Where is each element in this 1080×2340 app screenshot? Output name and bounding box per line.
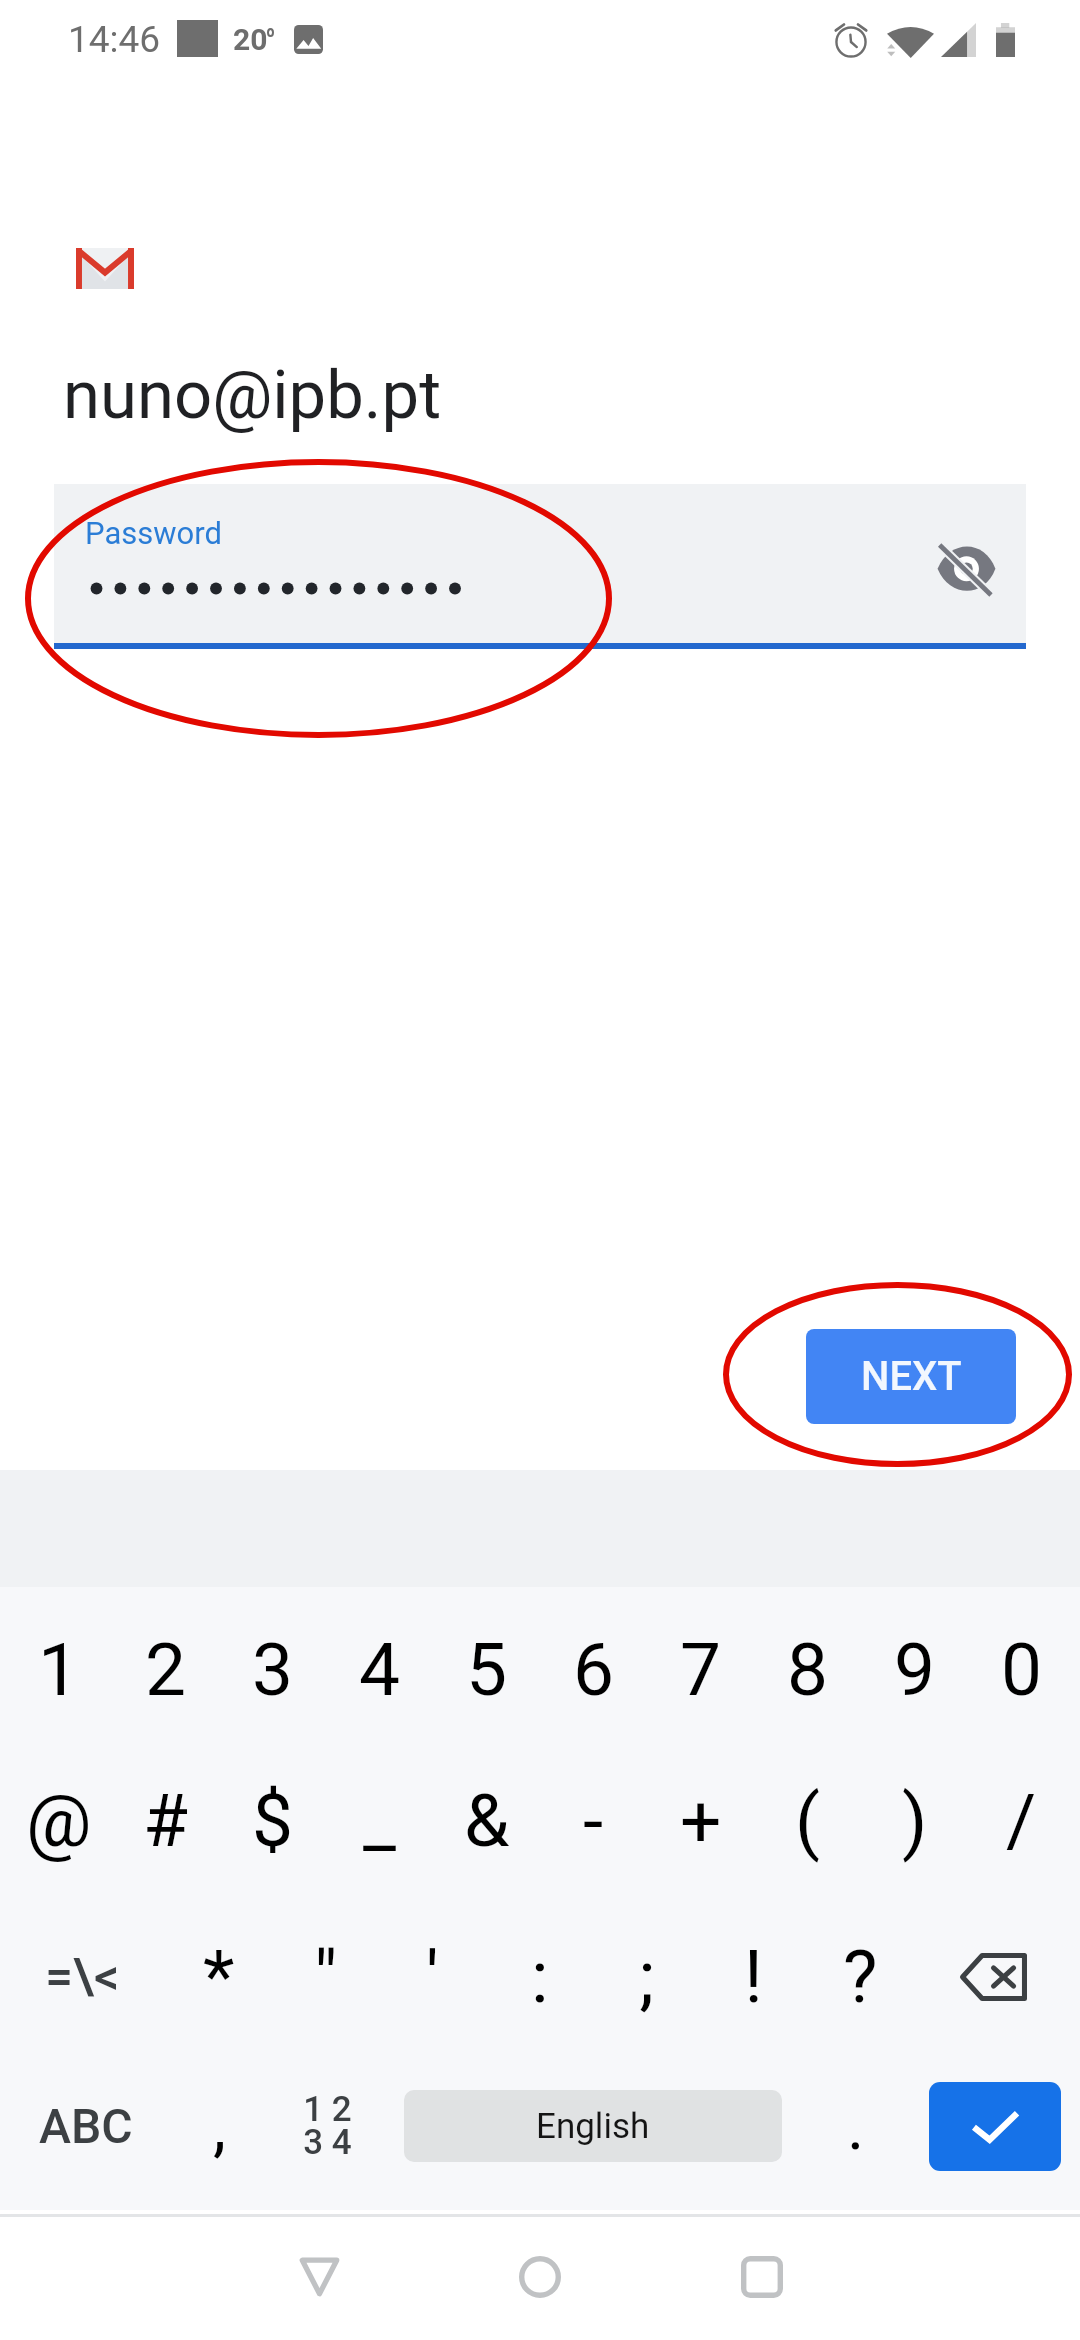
staticText: _ xyxy=(363,1778,396,1864)
button[interactable]: * xyxy=(165,1901,272,2053)
staticText: - xyxy=(583,1778,604,1864)
button[interactable]: 8 xyxy=(754,1594,861,1746)
button[interactable]: Recent apps xyxy=(722,2237,802,2317)
button[interactable]: Back xyxy=(279,2237,359,2317)
staticText: 0 xyxy=(1001,1627,1043,1713)
staticText: ' xyxy=(426,1934,439,2020)
staticText: nuno@ipb.pt xyxy=(63,356,442,435)
button[interactable]: 6 xyxy=(540,1594,647,1746)
button[interactable]: ( xyxy=(754,1745,861,1897)
button[interactable]: Password xyxy=(54,484,1026,643)
button[interactable]: Show password xyxy=(921,525,1011,615)
button[interactable]: 2 xyxy=(112,1594,219,1746)
button[interactable]: 5 xyxy=(433,1594,540,1746)
button[interactable]: NEXT xyxy=(806,1329,1016,1424)
button[interactable]: 7 xyxy=(647,1594,754,1746)
staticText: 1 xyxy=(38,1627,80,1713)
staticText: 20 xyxy=(233,22,268,57)
button[interactable]: : xyxy=(486,1901,593,2053)
button[interactable]: @ xyxy=(5,1745,112,1897)
button[interactable]: 1 xyxy=(5,1594,112,1746)
staticText: 5 xyxy=(466,1627,508,1713)
staticText: ( xyxy=(795,1778,820,1864)
button[interactable]: ; xyxy=(593,1901,700,2053)
staticText: 9 xyxy=(894,1627,936,1713)
staticText: + xyxy=(680,1778,722,1864)
staticText: 8 xyxy=(787,1627,829,1713)
staticText: 6 xyxy=(573,1627,615,1713)
staticText: ; xyxy=(639,1934,655,2020)
button[interactable]: 4 xyxy=(326,1594,433,1746)
staticText: " xyxy=(314,1934,338,2020)
staticText: =\< xyxy=(45,1948,120,2007)
staticText: / xyxy=(1006,1778,1037,1864)
button[interactable]: 0 xyxy=(968,1594,1075,1746)
staticText: . xyxy=(847,2088,865,2165)
staticText: , xyxy=(213,2088,226,2165)
button[interactable]: " xyxy=(272,1901,379,2053)
staticText: # xyxy=(143,1778,188,1864)
staticText: 3 xyxy=(252,1627,294,1713)
staticText: ! xyxy=(744,1934,763,2020)
button[interactable]: _ xyxy=(326,1745,433,1897)
staticText: English xyxy=(536,2106,650,2147)
staticText: 1 2 3 4 xyxy=(303,2089,352,2163)
staticText: 14:46 xyxy=(68,18,161,61)
button[interactable]: & xyxy=(433,1745,540,1897)
button[interactable]: 9 xyxy=(861,1594,968,1746)
staticText: 7 xyxy=(680,1627,722,1713)
button[interactable]: . xyxy=(782,2050,929,2202)
staticText: ? xyxy=(843,1934,878,2020)
button[interactable]: Home xyxy=(500,2237,580,2317)
staticText: NEXT xyxy=(861,1353,962,1400)
button[interactable]: , xyxy=(172,2050,266,2202)
button[interactable]: ABC xyxy=(0,2050,172,2202)
button[interactable]: + xyxy=(647,1745,754,1897)
button[interactable]: ' xyxy=(379,1901,486,2053)
button[interactable]: $ xyxy=(219,1745,326,1897)
staticText: $ xyxy=(252,1778,294,1864)
button[interactable]: Enter xyxy=(929,2082,1061,2171)
staticText: @ xyxy=(26,1778,92,1864)
staticText: : xyxy=(531,1934,549,2020)
button[interactable]: ! xyxy=(700,1901,807,2053)
button[interactable]: ? xyxy=(807,1901,914,2053)
staticText: & xyxy=(464,1778,510,1864)
staticText: 4 xyxy=(359,1627,401,1713)
staticText: ) xyxy=(902,1778,928,1864)
staticText: * xyxy=(203,1934,235,2020)
button[interactable]: 3 xyxy=(219,1594,326,1746)
button[interactable]: =\< xyxy=(0,1901,165,2053)
staticText: Password xyxy=(85,515,222,551)
button[interactable]: Backspace xyxy=(914,1901,1072,2053)
button[interactable]: English xyxy=(404,2090,782,2162)
staticText: 2 xyxy=(145,1627,187,1713)
button[interactable]: / xyxy=(968,1745,1075,1897)
button[interactable]: ) xyxy=(861,1745,968,1897)
button[interactable]: 1 2 3 4 xyxy=(266,2050,388,2202)
staticText: ABC xyxy=(39,2098,133,2154)
button[interactable]: # xyxy=(112,1745,219,1897)
button[interactable]: - xyxy=(540,1745,647,1897)
